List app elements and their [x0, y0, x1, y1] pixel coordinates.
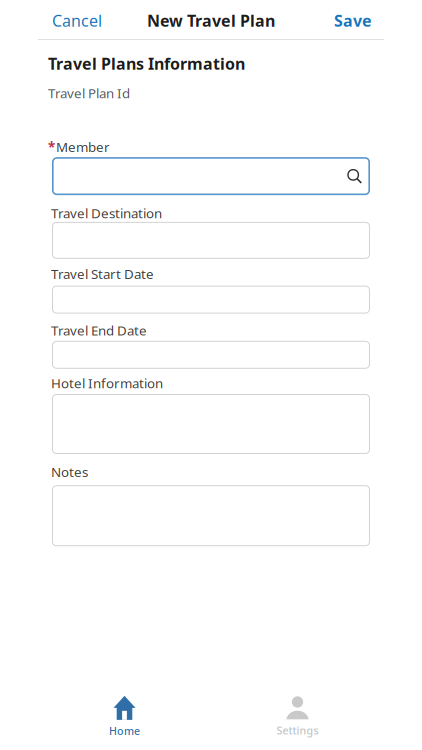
staticText: Travel End Date: [51, 322, 147, 339]
staticText: Settings: [276, 723, 318, 737]
staticText: *: [48, 138, 55, 156]
button[interactable]: Travel End Date: [48, 341, 370, 369]
button[interactable]: Notes: [48, 485, 370, 546]
staticText: New Travel Plan: [147, 10, 275, 31]
button[interactable]: Cancel: [52, 10, 102, 31]
button[interactable]: Travel Start Date: [48, 286, 370, 314]
button[interactable]: Settings: [211, 696, 384, 737]
staticText: Travel Start Date: [51, 265, 154, 283]
staticText: Travel Plans Information: [48, 53, 245, 74]
staticText: Cancel: [52, 10, 102, 31]
staticText: Travel Destination: [51, 204, 162, 222]
staticText: Travel Plan Id: [48, 84, 130, 102]
staticText: Hotel Information: [51, 374, 163, 392]
button[interactable]: Hotel Information: [48, 394, 370, 454]
staticText: Save: [334, 10, 372, 31]
staticText: Home: [109, 724, 140, 738]
staticText: Member: [56, 138, 110, 156]
button[interactable]: Home: [38, 696, 211, 738]
button[interactable]: Save: [334, 10, 372, 31]
staticText: Notes: [51, 463, 88, 481]
button[interactable]: Member search: [48, 157, 370, 195]
button[interactable]: Travel Destination: [48, 222, 370, 259]
